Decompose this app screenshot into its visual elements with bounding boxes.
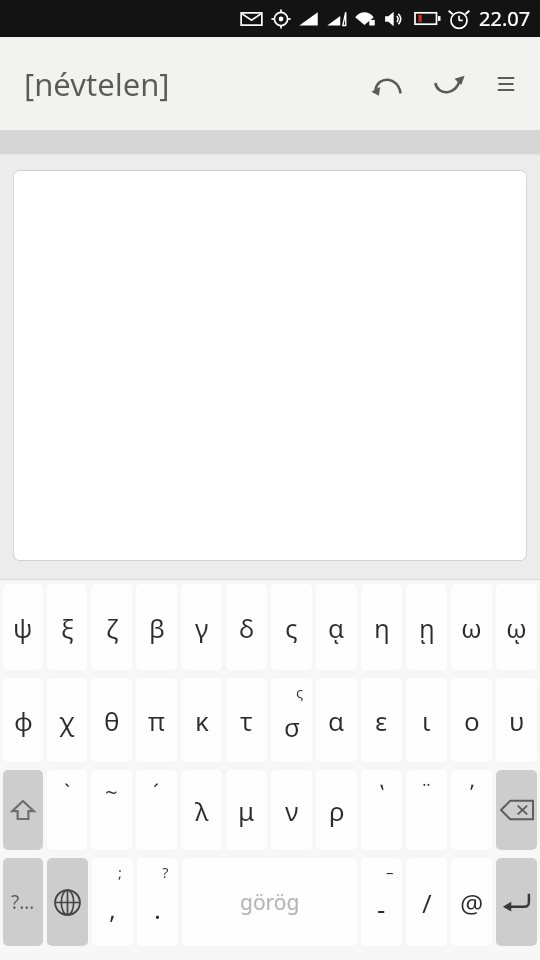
button[interactable]: Enter (496, 858, 537, 946)
staticText: κ (195, 703, 209, 738)
button[interactable]: β (136, 584, 177, 670)
staticText: ` (64, 776, 71, 806)
button[interactable]: ζ (91, 584, 132, 670)
button[interactable]: ν (271, 770, 312, 850)
staticText: ζ (106, 610, 118, 645)
staticText: @ (460, 885, 484, 920)
button[interactable]: Menu (480, 58, 532, 110)
button[interactable]: γ (181, 584, 222, 670)
staticText: ο (464, 703, 480, 738)
staticText: φ (14, 703, 33, 738)
button[interactable]: α (316, 678, 357, 762)
button[interactable]: κ (181, 678, 222, 762)
staticText: ?… (11, 889, 35, 915)
button[interactable]: Redo (418, 53, 480, 115)
staticText: π (148, 703, 165, 738)
button[interactable]: ο (451, 678, 492, 762)
button[interactable]: ι (406, 678, 447, 762)
staticText: ν (285, 793, 299, 828)
staticText: γ (195, 610, 209, 645)
staticText: , (109, 891, 116, 926)
staticText: ´ (153, 776, 160, 806)
staticText: ; (118, 862, 123, 882)
button[interactable]: ʽ (361, 770, 402, 850)
staticText: ψ (13, 610, 33, 645)
staticText: μ (238, 793, 255, 828)
button[interactable]: Change keyboard language (47, 858, 88, 946)
button[interactable]: ῃ (406, 584, 447, 670)
staticText: ω (461, 610, 482, 645)
button[interactable]: ω (451, 584, 492, 670)
staticText: υ (509, 703, 525, 738)
button[interactable]: @ (451, 858, 492, 946)
button[interactable]: ρ (316, 770, 357, 850)
staticText: ε (375, 703, 388, 738)
staticText: . (154, 891, 161, 926)
staticText: η (374, 610, 390, 645)
staticText: χ (59, 703, 75, 738)
button[interactable]: ~ (91, 770, 132, 850)
staticText: ? (162, 862, 169, 882)
staticText: [névtelen] (24, 63, 170, 105)
staticText: ʽ (380, 776, 384, 806)
staticText: ʼ (470, 776, 474, 806)
button[interactable]: χ (47, 678, 87, 762)
button[interactable]: ξ (47, 584, 87, 670)
button[interactable]: π (136, 678, 177, 762)
staticText: ς (296, 682, 304, 702)
button[interactable]: λ (181, 770, 222, 850)
staticText: ¨ (420, 776, 433, 806)
staticText: δ (239, 610, 255, 645)
button[interactable]: ?… (3, 858, 43, 946)
button[interactable]: ε (361, 678, 402, 762)
button[interactable]: φ (3, 678, 43, 762)
staticText: ι (422, 703, 431, 738)
button[interactable]: ; (92, 858, 133, 946)
staticText: τ (240, 703, 253, 738)
staticText: / (422, 885, 432, 920)
button[interactable]: ` (47, 770, 87, 850)
button[interactable] (13, 170, 527, 561)
staticText: ρ (329, 793, 345, 828)
button[interactable]: / (406, 858, 447, 946)
button[interactable]: Undo (356, 53, 418, 115)
button[interactable]: ψ (3, 584, 43, 670)
staticText: ς (285, 610, 298, 645)
staticText: λ (195, 793, 209, 828)
button[interactable]: ¨ (406, 770, 447, 850)
staticText: ᾳ (328, 610, 345, 645)
button[interactable]: ´ (136, 770, 177, 850)
button[interactable]: τ (226, 678, 267, 762)
button[interactable]: ς (271, 584, 312, 670)
staticText: 22.07 (479, 5, 531, 32)
button[interactable]: δ (226, 584, 267, 670)
staticText: ῃ (419, 610, 435, 645)
staticText: ῳ (506, 610, 527, 645)
button[interactable]: μ (226, 770, 267, 850)
button[interactable]: υ (496, 678, 537, 762)
button[interactable]: ? (137, 858, 178, 946)
button[interactable]: görög (182, 858, 357, 946)
button[interactable]: ʼ (451, 770, 492, 850)
button[interactable]: – (361, 858, 402, 946)
button[interactable]: θ (91, 678, 132, 762)
button[interactable]: Backspace (496, 770, 537, 850)
staticText: ~ (105, 776, 118, 806)
staticText: görög (240, 888, 300, 917)
staticText: β (149, 610, 165, 645)
staticText: θ (104, 703, 120, 738)
button[interactable]: ῳ (496, 584, 537, 670)
button[interactable]: Shift (3, 770, 43, 850)
staticText: ξ (61, 610, 74, 645)
staticText: - (377, 891, 386, 926)
button[interactable]: ς (271, 678, 312, 762)
staticText: α (328, 703, 345, 738)
staticText: – (386, 862, 394, 882)
staticText: σ (284, 709, 300, 744)
button[interactable]: ᾳ (316, 584, 357, 670)
button[interactable]: η (361, 584, 402, 670)
